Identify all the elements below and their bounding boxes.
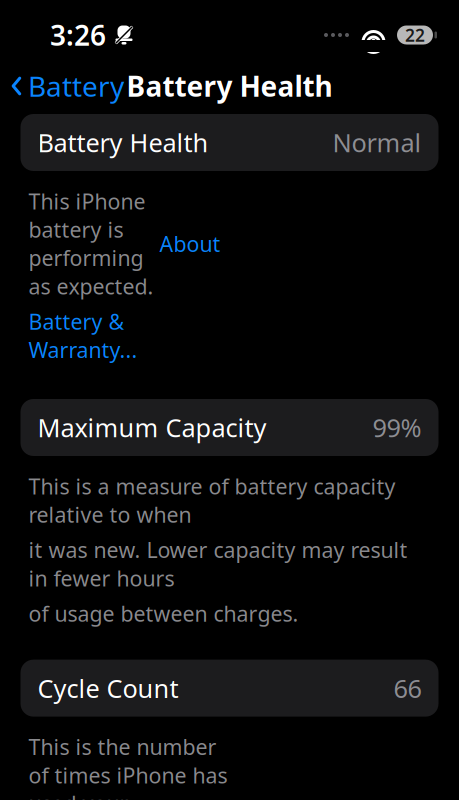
staticText: Battery & Warranty...	[28, 307, 137, 364]
button[interactable]: Battery Health	[20, 114, 438, 171]
button[interactable]: Battery	[0, 61, 124, 111]
staticText: 99%	[372, 411, 421, 444]
staticText: Battery Health	[37, 126, 208, 159]
staticText: Normal	[332, 126, 421, 159]
staticText: 66	[393, 671, 421, 705]
staticText: About	[159, 229, 220, 258]
staticText: 22	[405, 23, 425, 46]
staticText: This is the number of times iPhone has u…	[28, 733, 227, 800]
button[interactable]: Maximum Capacity	[20, 399, 438, 456]
staticText: Battery	[28, 67, 124, 105]
staticText: 3:26	[50, 16, 106, 54]
staticText: This iPhone battery is performing as exp…	[28, 187, 159, 300]
staticText: it was new. Lower capacity may result in…	[28, 536, 407, 592]
staticText: of usage between charges.	[28, 599, 298, 628]
staticText: This is a measure of battery capacity re…	[28, 472, 395, 529]
staticText: Cycle Count	[37, 671, 178, 705]
staticText: Battery Health	[126, 67, 332, 105]
button[interactable]: Cycle Count	[20, 660, 438, 717]
button[interactable]: Battery & Warranty...	[28, 307, 137, 364]
staticText: Maximum Capacity	[37, 411, 266, 444]
